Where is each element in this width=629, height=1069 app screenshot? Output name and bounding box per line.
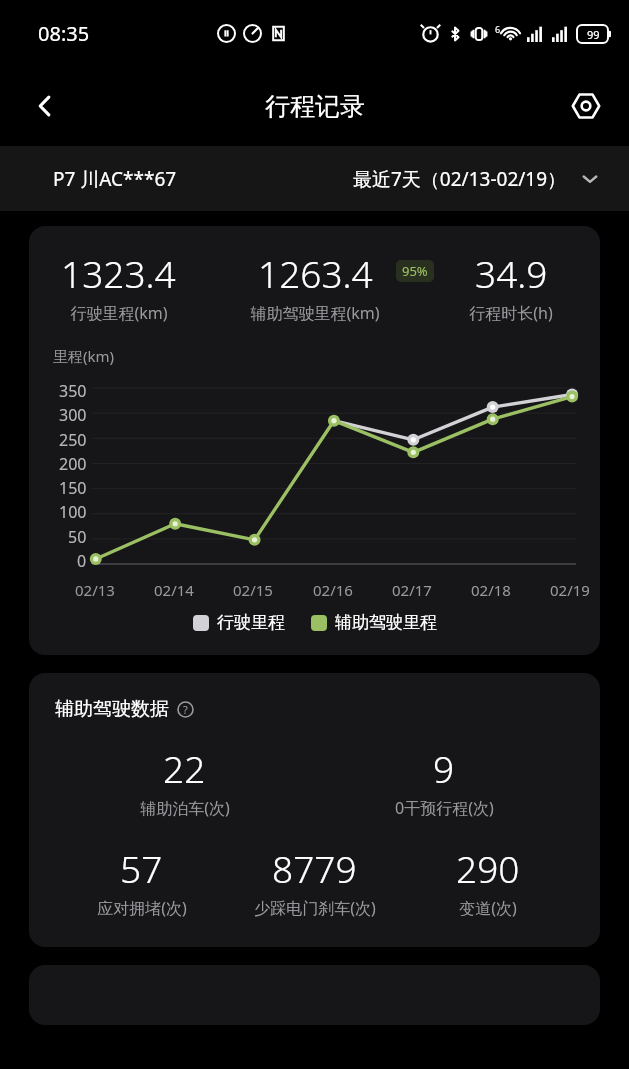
staticText: 350 <box>59 380 87 402</box>
button[interactable]: 返回 <box>22 83 68 129</box>
button[interactable]: 说明 <box>175 699 195 719</box>
staticText: 50 <box>68 526 87 548</box>
button[interactable]: 车辆设置 <box>563 83 609 129</box>
staticText: 里程(km) <box>53 346 115 366</box>
staticText: 290 <box>456 843 520 893</box>
staticText: 行程时长(h) <box>469 302 553 324</box>
staticText: 02/17 <box>392 580 432 600</box>
staticText: 9 <box>433 743 455 793</box>
staticText: 200 <box>59 453 87 475</box>
staticText: 57 <box>120 843 163 893</box>
staticText: 变道(次) <box>459 897 517 919</box>
staticText: 99 <box>587 27 600 42</box>
staticText: 150 <box>59 477 87 499</box>
staticText: 辅助驾驶数据 <box>55 697 169 721</box>
button[interactable]: 最近7天（02/13-02/19） <box>353 166 599 192</box>
staticText: 行驶里程 <box>217 612 285 633</box>
staticText: 34.9 <box>475 248 548 298</box>
staticText: 02/15 <box>233 580 273 600</box>
staticText: 最近7天（02/13-02/19） <box>353 166 567 192</box>
staticText: 行程记录 <box>265 91 365 122</box>
staticText: 100 <box>59 501 87 523</box>
staticText: 1263.4 <box>258 248 373 298</box>
staticText: 1323.4 <box>61 248 176 298</box>
staticText: 辅助驾驶里程 <box>335 612 437 633</box>
staticText: 0干预行程(次) <box>395 797 494 819</box>
staticText: 22 <box>163 743 206 793</box>
staticText: 辅助泊车(次) <box>140 797 230 819</box>
staticText: 250 <box>59 429 87 451</box>
staticText: 02/18 <box>471 580 511 600</box>
staticText: 辅助驾驶里程(km) <box>250 302 380 324</box>
button[interactable]: 1323.4 <box>29 226 600 655</box>
staticText: 行驶里程(km) <box>70 302 168 324</box>
staticText: 少踩电门刹车(次) <box>254 897 376 919</box>
staticText: 8779 <box>272 843 357 893</box>
staticText: ? <box>183 702 188 717</box>
staticText: 6 <box>495 23 501 35</box>
staticText: 02/19 <box>550 580 590 600</box>
staticText: 02/16 <box>313 580 353 600</box>
staticText: 02/13 <box>75 580 115 600</box>
staticText: 08:35 <box>38 20 90 47</box>
button[interactable]: P7 川AC***67 <box>53 166 177 192</box>
button[interactable]: 辅助驾驶数据 <box>29 673 600 947</box>
staticText: 300 <box>59 404 87 426</box>
staticText: 02/14 <box>154 580 194 600</box>
staticText: 应对拥堵(次) <box>97 897 187 919</box>
staticText: 0 <box>77 550 87 572</box>
staticText: 95% <box>402 262 428 280</box>
